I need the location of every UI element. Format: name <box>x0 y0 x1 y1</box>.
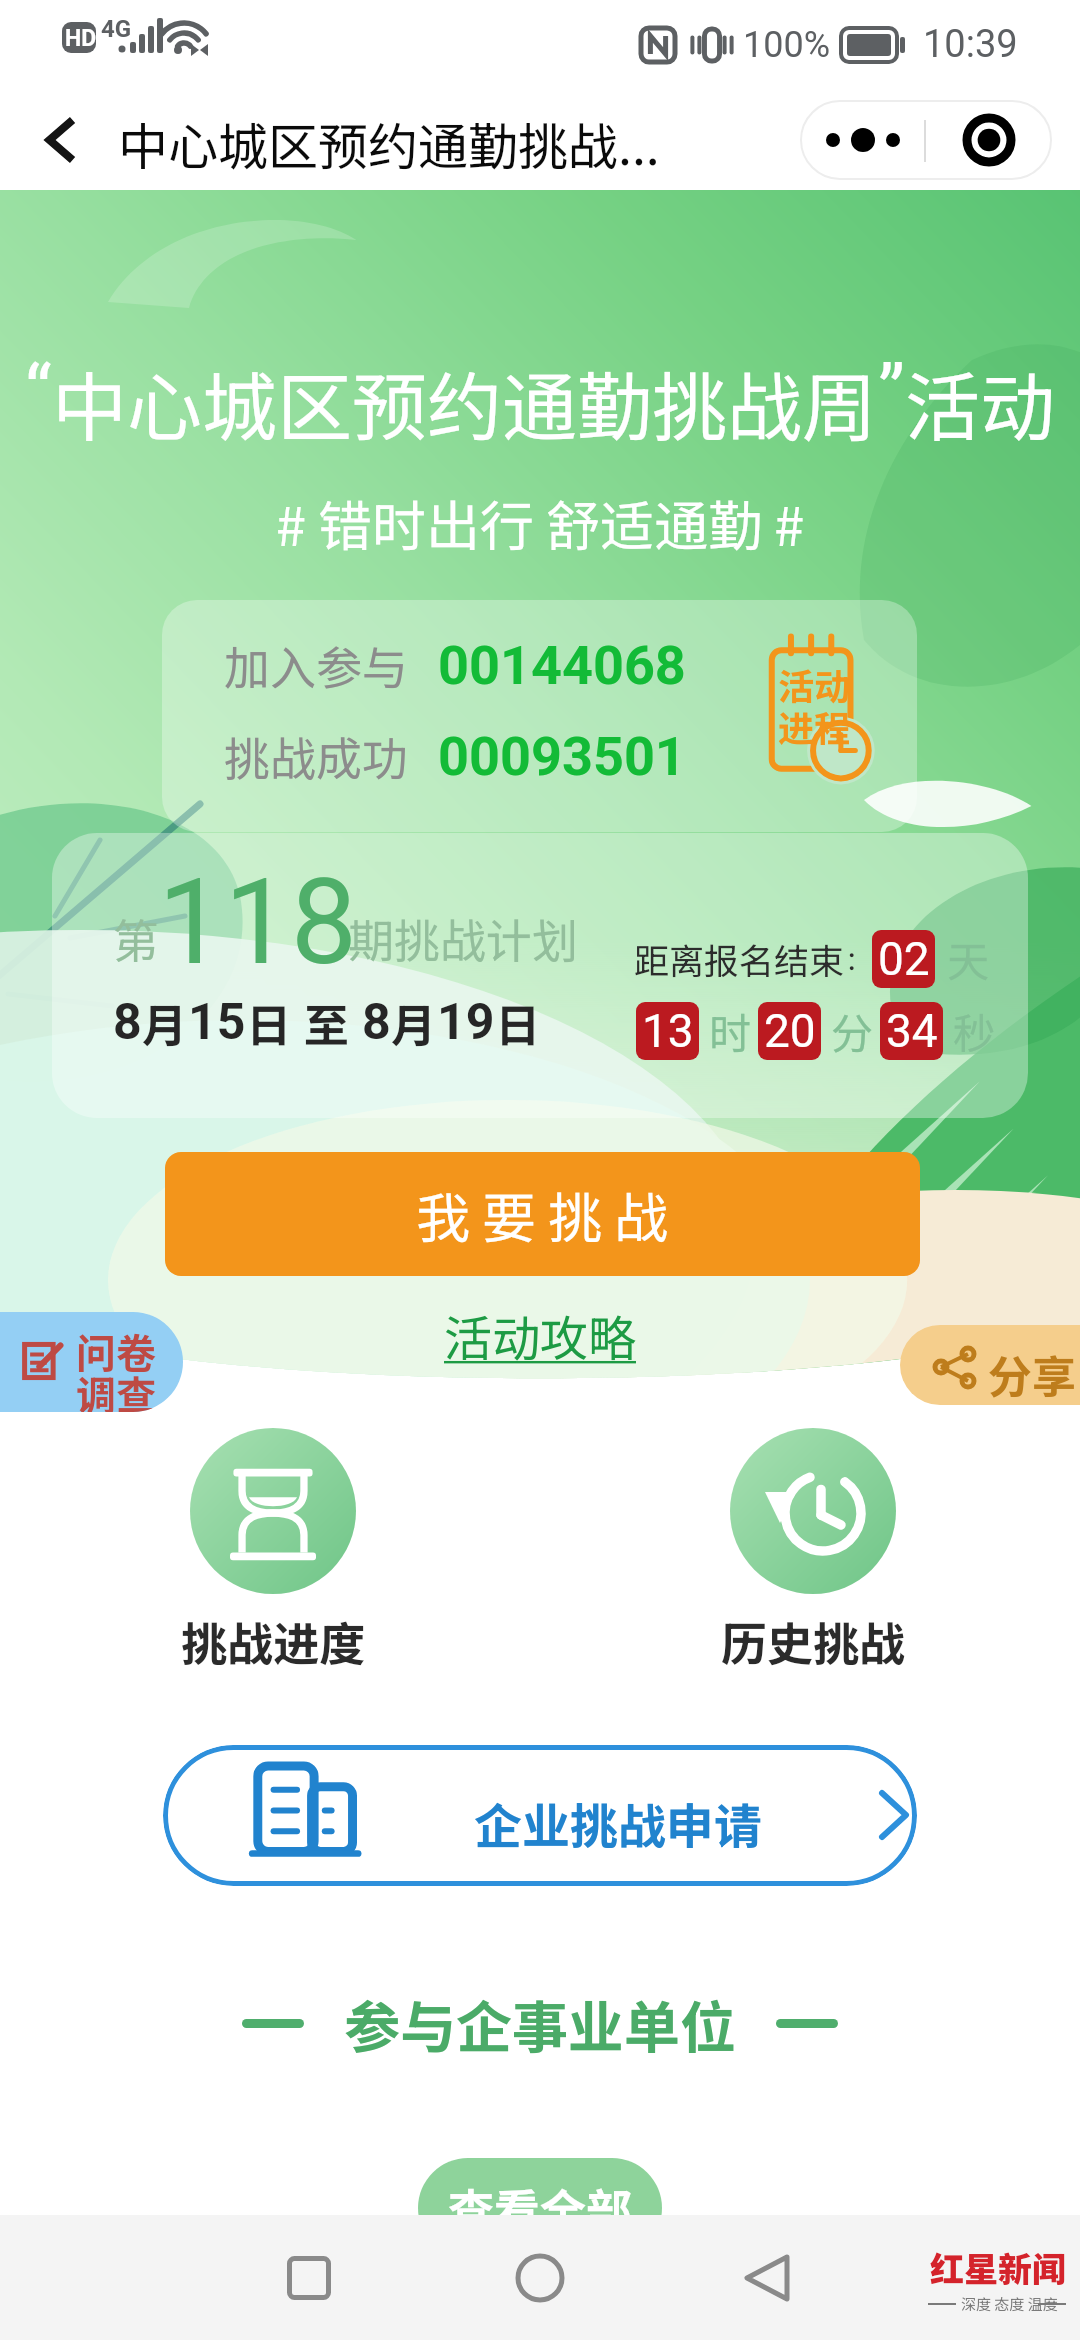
button[interactable]: 查看全部 <box>418 2158 662 2258</box>
staticText: 02 <box>878 932 930 986</box>
staticText: 深度 态度 温度 <box>961 2293 1058 2315</box>
staticText: 分享 <box>988 1342 1076 1405</box>
button[interactable]: 企业挑战申请 <box>163 1745 917 1886</box>
button[interactable]: Back <box>22 100 102 180</box>
staticText: 10:39 <box>923 22 1018 67</box>
staticText: 00144068 <box>438 634 686 697</box>
staticText: 8 <box>113 993 142 1052</box>
staticText: 4G <box>101 15 132 43</box>
button[interactable]: 问卷 <box>0 1312 183 1412</box>
staticText: 15 <box>188 993 246 1052</box>
staticText: 企业挑战申请 <box>474 1788 763 1858</box>
staticText: 时 <box>709 1000 752 1061</box>
button[interactable]: Close mini program <box>926 100 1052 180</box>
staticText: 19 <box>437 993 495 1052</box>
staticText: 中心城区预约通勤挑战... <box>118 107 660 179</box>
staticText: # 错时出行 舒适通勤 # <box>276 483 805 561</box>
button[interactable]: 我 要 挑 战 <box>165 1152 920 1276</box>
staticText: 天 <box>947 928 990 989</box>
staticText: 活动 <box>778 658 851 710</box>
staticText: ” <box>878 348 905 436</box>
staticText: 红星新闻 <box>930 2243 1066 2292</box>
staticText: 至 <box>304 990 350 1055</box>
staticText: 我 要 挑 战 <box>416 1175 669 1253</box>
staticText: 中心城区预约通勤挑战周 <box>52 348 878 457</box>
button[interactable]: Recent apps <box>249 2215 369 2340</box>
staticText: 月 <box>391 990 437 1055</box>
staticText: 100% <box>743 24 831 66</box>
button[interactable] <box>190 1428 356 1594</box>
staticText: 挑战成功 <box>224 723 408 790</box>
staticText: 13 <box>642 1004 694 1058</box>
staticText: 8 <box>362 993 391 1052</box>
button[interactable]: 分享 <box>900 1325 1080 1405</box>
staticText: 分 <box>831 1000 874 1061</box>
button[interactable]: More options <box>800 100 926 180</box>
staticText: 月 <box>142 990 188 1055</box>
staticText: 距离报名结束 <box>634 933 845 984</box>
staticText: 日 <box>495 990 541 1055</box>
staticText: 问卷 <box>76 1322 156 1380</box>
staticText: 历史挑战 <box>721 1608 905 1675</box>
staticText: 挑战进度 <box>181 1608 365 1675</box>
staticText: 秒 <box>953 1000 996 1061</box>
button[interactable]: 活动攻略 <box>444 1300 637 1370</box>
staticText: 第 <box>113 905 159 972</box>
staticText: HD <box>65 25 97 52</box>
staticText: 参与企事业单位 <box>344 1983 736 2064</box>
staticText: 日 <box>246 990 292 1055</box>
staticText: 调查 <box>76 1364 156 1412</box>
staticText: 34 <box>886 1004 938 1058</box>
button[interactable] <box>730 1428 896 1594</box>
staticText: ： <box>845 940 872 978</box>
staticText: 00093501 <box>438 725 686 788</box>
button[interactable]: Back <box>707 2215 827 2340</box>
staticText: 118 <box>158 854 357 992</box>
staticText: 20 <box>764 1004 816 1058</box>
staticText: 加入参与 <box>224 632 408 699</box>
staticText: 期挑战计划 <box>348 905 578 972</box>
staticText: “ <box>25 348 52 436</box>
staticText: 进程 <box>778 700 851 752</box>
staticText: 查看全部 <box>448 2175 632 2242</box>
button[interactable]: Home <box>480 2215 600 2340</box>
staticText: 活动 <box>905 348 1056 457</box>
